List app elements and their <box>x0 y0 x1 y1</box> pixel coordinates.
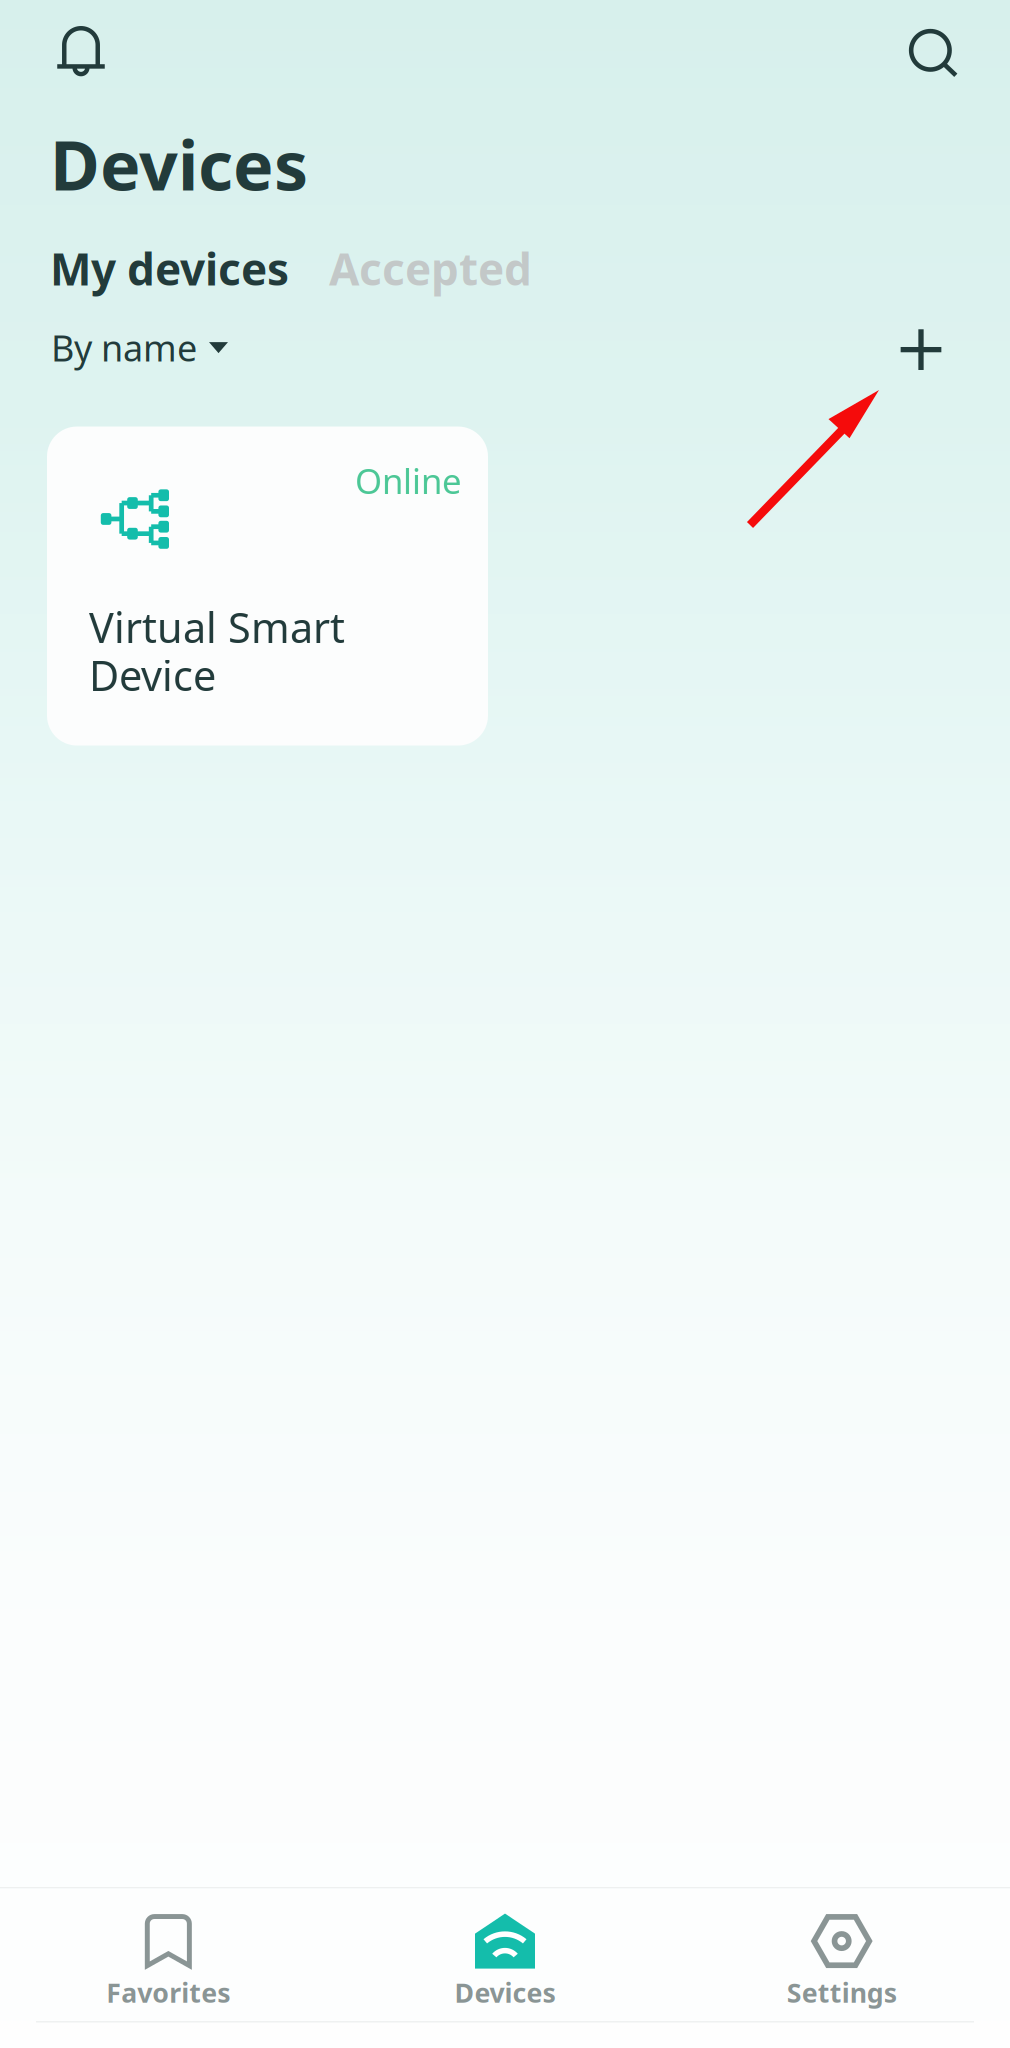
staticText: Accepted <box>329 239 532 298</box>
button[interactable]: By name <box>51 314 228 381</box>
staticText: Devices <box>50 119 308 209</box>
staticText: My devices <box>50 239 289 298</box>
button[interactable]: Notifications <box>0 0 131 94</box>
button[interactable]: Online <box>47 426 488 745</box>
staticText: Online <box>355 457 462 503</box>
staticText: Virtual Smart Device <box>89 599 345 702</box>
staticText: Devices <box>454 1975 555 2010</box>
button[interactable]: Search <box>885 1 1010 92</box>
button[interactable]: Accepted <box>309 239 552 298</box>
button[interactable]: Add device <box>874 315 965 381</box>
staticText: Favorites <box>106 1975 230 2010</box>
button[interactable]: Settings <box>673 1889 1010 2021</box>
button[interactable]: Devices <box>337 1889 673 2021</box>
staticText: Settings <box>787 1975 897 2010</box>
button[interactable]: Favorites <box>0 1889 337 2021</box>
button[interactable]: My devices <box>50 239 309 298</box>
staticText: By name <box>51 324 197 371</box>
